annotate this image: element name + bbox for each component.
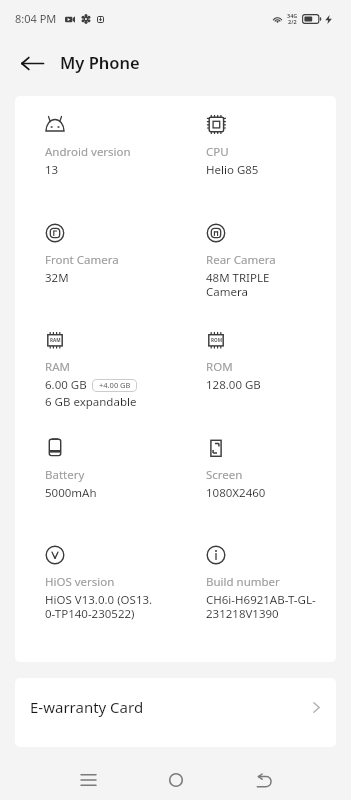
staticText: Build number <box>206 575 280 589</box>
button[interactable]: Back <box>220 760 308 800</box>
staticText: 13 <box>45 163 59 177</box>
staticText: 5000mAh <box>45 486 97 500</box>
button[interactable]: Back <box>18 49 46 77</box>
button[interactable]: Home <box>132 760 220 800</box>
staticText: 32M <box>45 271 69 285</box>
staticText: Helio G85 <box>206 163 259 177</box>
staticText: +4.00 GB <box>99 381 131 390</box>
staticText: My Phone <box>60 53 140 73</box>
staticText: 8:04 PM <box>15 12 57 26</box>
button[interactable]: E-warranty Card <box>15 678 336 747</box>
staticText: CH6i-H6921AB-T-GL- 231218V1390 <box>206 593 316 621</box>
staticText: Front Camera <box>45 253 119 267</box>
staticText: E-warranty Card <box>30 698 144 717</box>
staticText: ROM <box>211 338 222 343</box>
staticText: Battery <box>45 468 85 482</box>
staticText: 34G <box>287 13 298 19</box>
staticText: 2/2 <box>288 19 297 25</box>
staticText: HiOS version <box>45 575 115 589</box>
staticText: CPU <box>206 145 229 159</box>
staticText: Screen <box>206 468 243 482</box>
staticText: ROM <box>206 360 233 374</box>
button[interactable]: Recent apps <box>44 760 132 800</box>
staticText: 48M TRIPLE Camera <box>206 271 270 299</box>
staticText: Android version <box>45 145 131 159</box>
staticText: Rear Camera <box>206 253 276 267</box>
staticText: 1080X2460 <box>206 486 266 500</box>
staticText: RAM <box>50 338 61 343</box>
staticText: HiOS V13.0.0 (OS13. 0-TP140-230522) <box>45 593 153 621</box>
staticText: RAM <box>45 360 70 374</box>
staticText: 128.00 GB <box>206 378 261 392</box>
staticText: 6 GB expandable <box>45 395 137 409</box>
staticText: 6.00 GB <box>45 378 87 392</box>
